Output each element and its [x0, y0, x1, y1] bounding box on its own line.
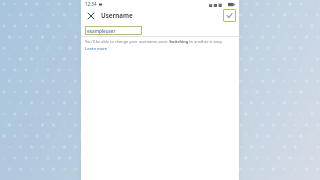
- button[interactable]: Learn more: [85, 46, 108, 51]
- staticText: exampleuser: [87, 28, 116, 34]
- staticText: 12:34: [85, 1, 97, 7]
- staticText: You'll be able to change your username s…: [85, 39, 223, 44]
- staticText: Learn more: [85, 46, 108, 51]
- staticText: Username: [101, 11, 133, 19]
- button[interactable]: Close: [85, 10, 96, 21]
- button[interactable]: exampleuser: [85, 26, 142, 35]
- button[interactable]: Confirm: [223, 9, 236, 22]
